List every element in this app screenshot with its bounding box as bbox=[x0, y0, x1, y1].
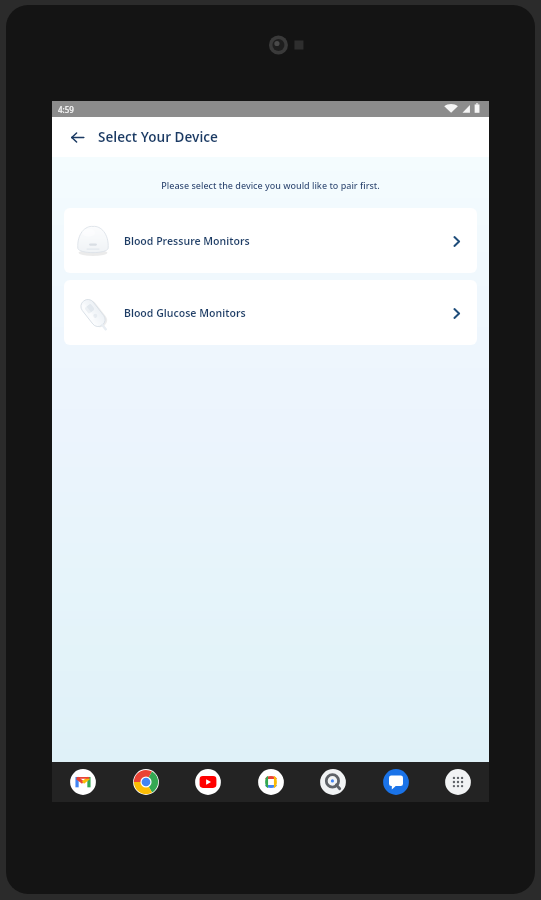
button[interactable]: Back bbox=[64, 124, 90, 150]
button[interactable]: YouTube bbox=[194, 768, 222, 796]
button[interactable]: Chrome bbox=[132, 768, 160, 796]
staticText: Blood Glucose Monitors bbox=[124, 306, 443, 320]
button[interactable]: Blood Glucose Monitors bbox=[64, 280, 477, 345]
staticText: 4:59 bbox=[58, 104, 74, 115]
button[interactable]: Gmail bbox=[69, 768, 97, 796]
button[interactable]: Blood Pressure Monitors bbox=[64, 208, 477, 273]
button[interactable]: Search bbox=[319, 768, 347, 796]
button[interactable]: Photos bbox=[257, 768, 285, 796]
staticText: Select Your Device bbox=[98, 128, 218, 146]
button[interactable]: Messages bbox=[382, 768, 410, 796]
button[interactable]: All apps bbox=[444, 768, 472, 796]
staticText: Please select the device you would like … bbox=[52, 179, 489, 191]
staticText: Blood Pressure Monitors bbox=[124, 234, 443, 248]
